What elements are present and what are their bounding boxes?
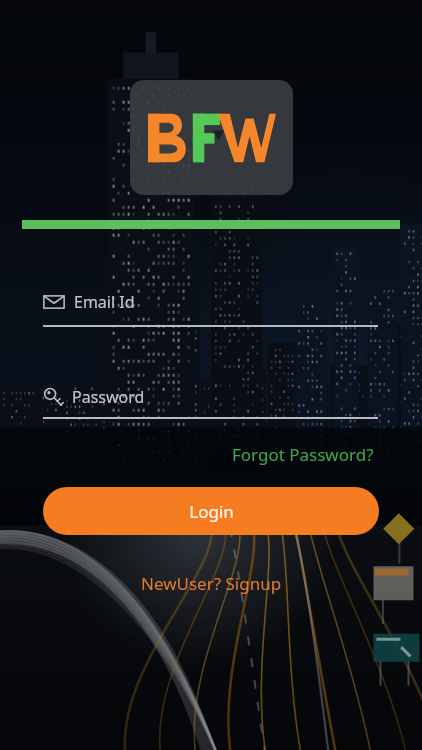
staticText: Password: [72, 386, 145, 408]
staticText: Login: [189, 500, 234, 523]
staticText: Email Id: [74, 291, 135, 313]
button[interactable]: Forgot Password?: [228, 439, 378, 470]
button[interactable]: Password: [43, 386, 378, 419]
button[interactable]: Login: [43, 487, 379, 535]
button[interactable]: Email Id: [43, 291, 378, 327]
staticText: NewUser? Signup: [141, 572, 282, 595]
staticText: Forgot Password?: [232, 443, 374, 466]
button[interactable]: NewUser? Signup: [133, 567, 290, 600]
